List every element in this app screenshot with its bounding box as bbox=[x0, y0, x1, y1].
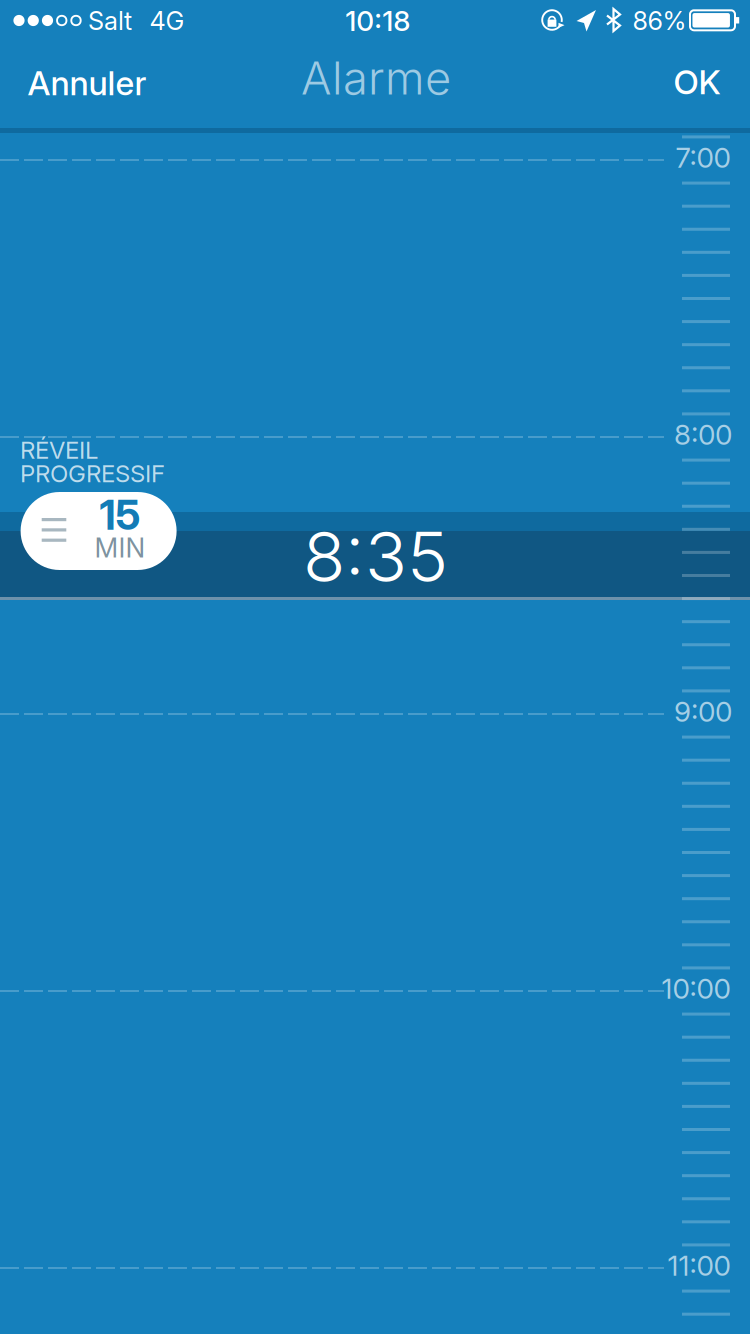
staticText: 8:35 bbox=[303, 515, 448, 598]
staticText: Annuler bbox=[27, 63, 146, 103]
staticText: RÉVEIL bbox=[20, 435, 98, 464]
staticText: 11:00 bbox=[667, 1249, 730, 1282]
staticText: 10:00 bbox=[661, 972, 730, 1005]
button[interactable]: 15 bbox=[21, 492, 177, 570]
staticText: PROGRESSIF bbox=[20, 459, 165, 488]
staticText: MIN bbox=[94, 532, 145, 564]
staticText: 10:18 bbox=[345, 4, 410, 38]
staticText: 7:00 bbox=[675, 141, 730, 174]
staticText: OK bbox=[673, 62, 720, 102]
staticText: 86% bbox=[632, 5, 686, 36]
staticText: Salt bbox=[88, 5, 132, 36]
button[interactable]: OK bbox=[642, 38, 750, 126]
staticText: Alarme bbox=[301, 51, 451, 105]
staticText: 9:00 bbox=[674, 695, 732, 728]
staticText: 4G bbox=[149, 5, 184, 36]
staticText: 15 bbox=[99, 490, 140, 540]
staticText: 8:00 bbox=[674, 418, 732, 451]
button[interactable]: Annuler bbox=[0, 39, 174, 127]
